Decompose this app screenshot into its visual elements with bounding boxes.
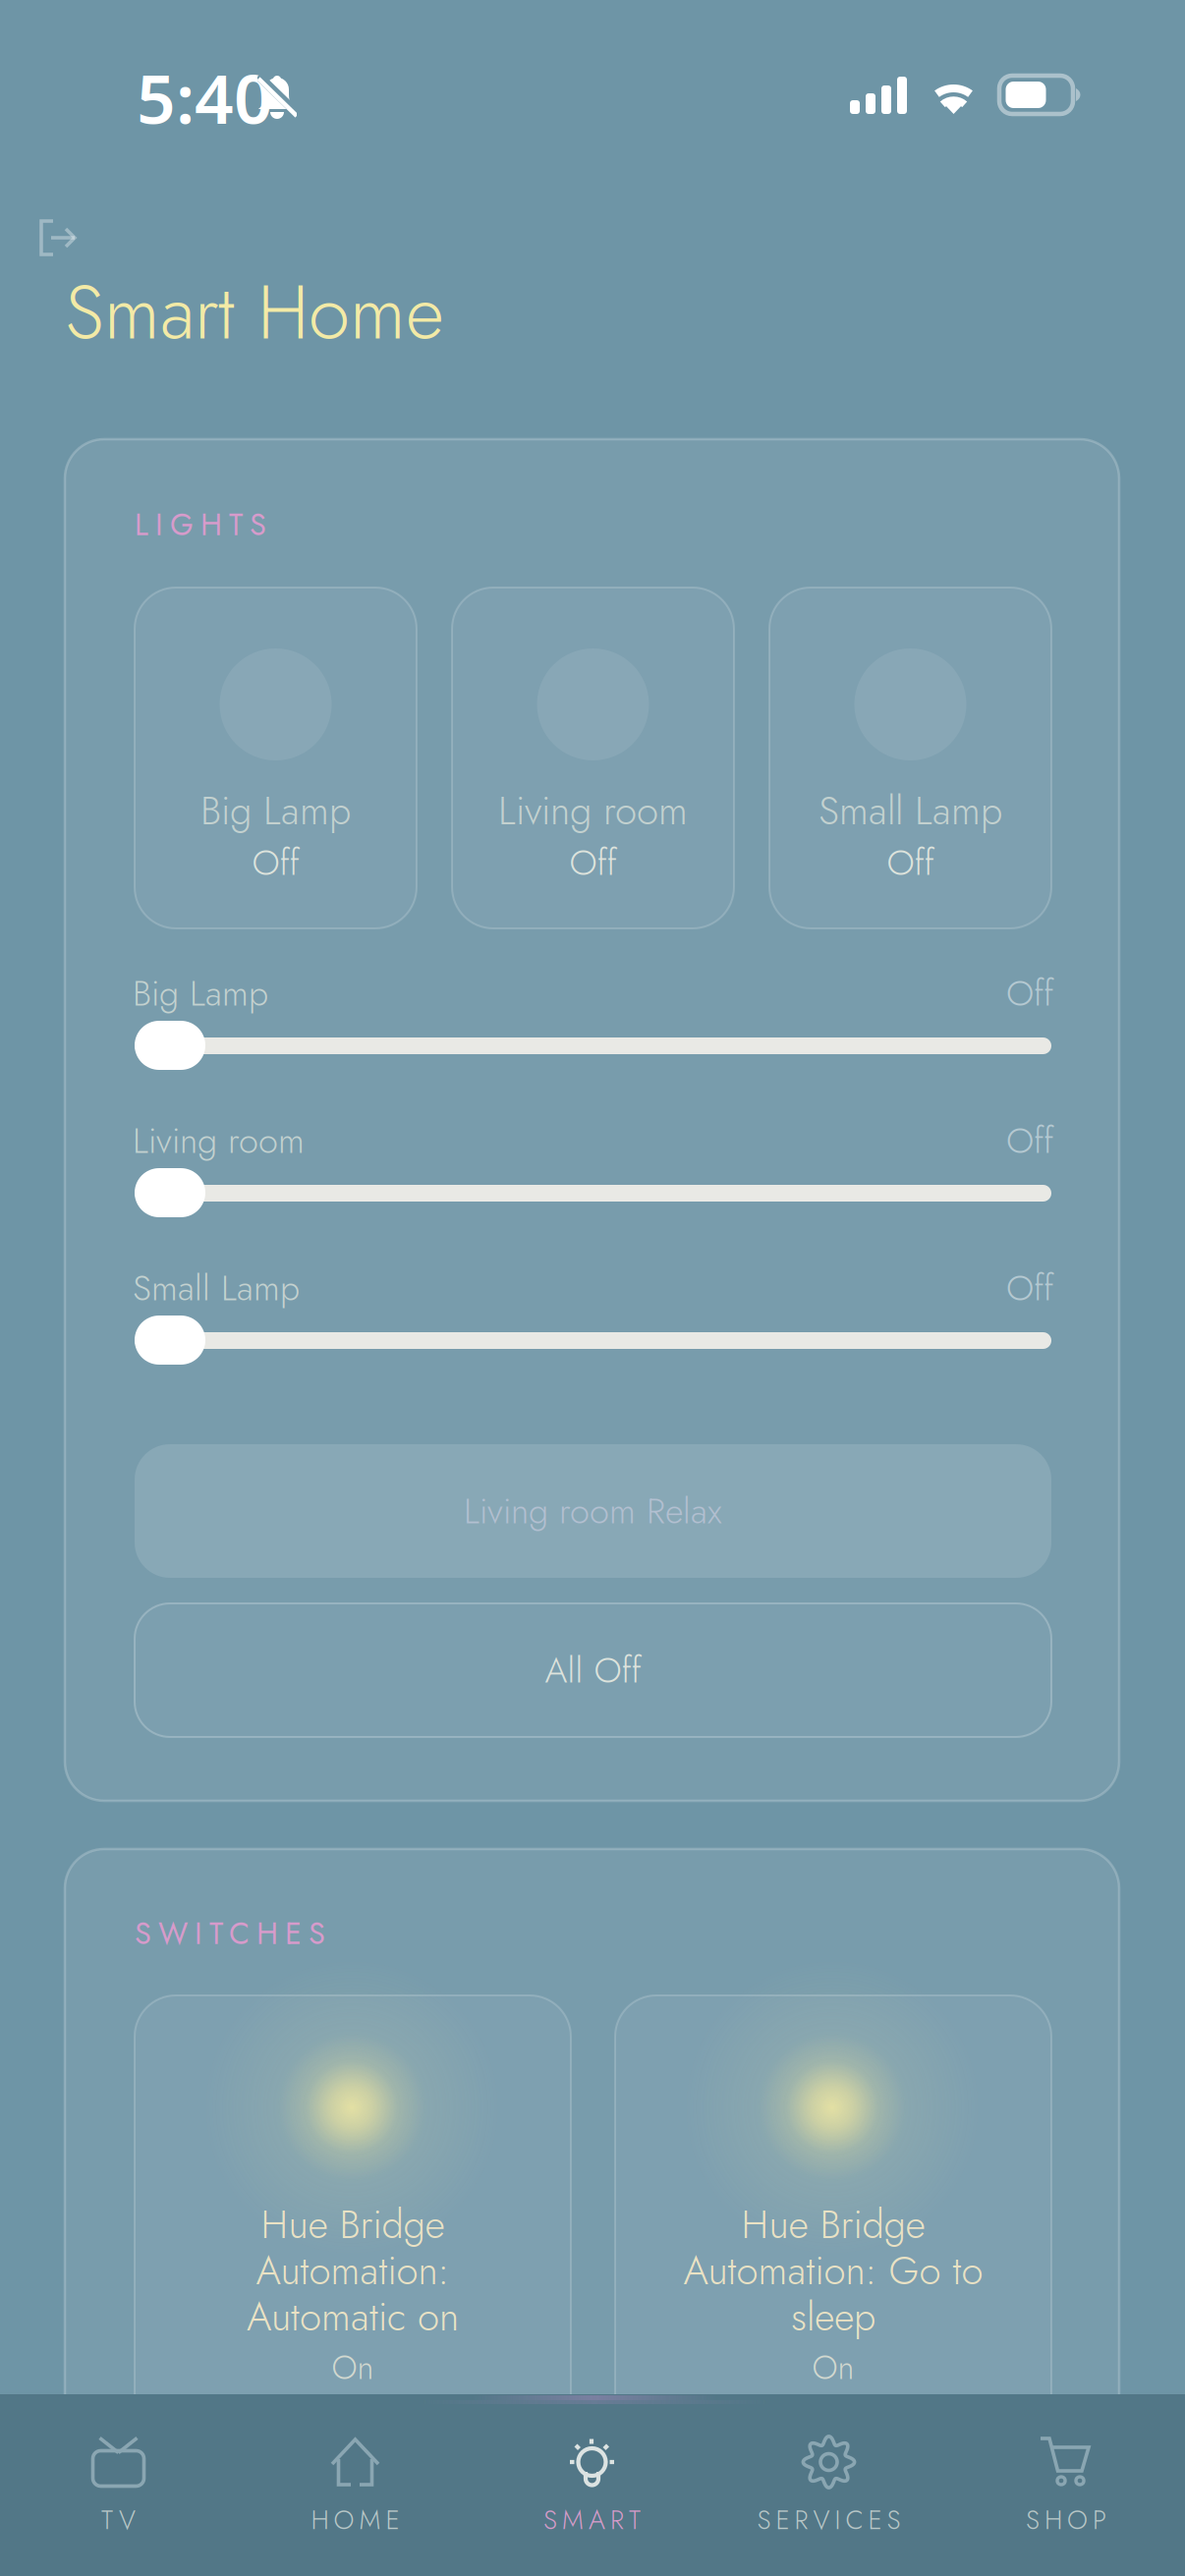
staticText: SERVICES xyxy=(757,2501,901,2539)
button[interactable]: HOME xyxy=(237,2394,474,2576)
staticText: LIGHTS xyxy=(135,503,266,546)
button[interactable]: SERVICES xyxy=(710,2394,947,2576)
staticText: Off xyxy=(569,837,617,888)
staticText: TV xyxy=(101,2501,136,2539)
staticText: Automatic on xyxy=(247,2288,459,2345)
staticText: Big Lamp xyxy=(200,782,351,839)
staticText: Living room Relax xyxy=(464,1485,722,1537)
staticText: HOME xyxy=(311,2501,399,2539)
staticText: Off xyxy=(252,837,299,888)
button[interactable]: Living room Relax xyxy=(135,1444,1051,1578)
button[interactable]: Hue Bridge xyxy=(615,1995,1051,2467)
button[interactable]: SMART xyxy=(474,2394,710,2576)
staticText: Off xyxy=(887,837,934,888)
staticText: SMART xyxy=(543,2501,641,2539)
staticText: Off xyxy=(1006,1115,1053,1166)
button[interactable]: Big Lamp xyxy=(135,588,417,928)
staticText: Automation: xyxy=(256,2242,450,2299)
button[interactable]: SHOP xyxy=(948,2394,1185,2576)
staticText: Small Lamp xyxy=(818,782,1002,839)
button[interactable]: TV xyxy=(0,2394,237,2576)
staticText: Automation: Go to xyxy=(683,2242,983,2299)
staticText: Living room xyxy=(133,1115,305,1166)
staticText: SHOP xyxy=(1026,2501,1106,2539)
staticText: SWITCHES xyxy=(135,1912,325,1955)
staticText: Small Lamp xyxy=(133,1262,300,1314)
staticText: All Off xyxy=(545,1645,641,1696)
staticText: sleep xyxy=(791,2288,875,2345)
button[interactable]: Hue Bridge xyxy=(135,1995,571,2467)
button[interactable]: Living room xyxy=(452,588,734,928)
staticText: Smart Home xyxy=(65,258,444,366)
staticText: Big Lamp xyxy=(133,968,268,1019)
button[interactable]: All Off xyxy=(135,1603,1051,1737)
staticText: Hue Bridge xyxy=(741,2196,925,2253)
staticText: On xyxy=(332,2344,374,2391)
staticText: Hue Bridge xyxy=(261,2196,445,2253)
staticText: On xyxy=(812,2344,854,2391)
staticText: Living room xyxy=(498,782,688,839)
button[interactable]: Log out xyxy=(37,218,79,257)
staticText: Off xyxy=(1006,1262,1053,1314)
staticText: Off xyxy=(1006,968,1053,1019)
staticText: 5:40 xyxy=(137,52,273,143)
button[interactable]: Small Lamp xyxy=(769,588,1051,928)
